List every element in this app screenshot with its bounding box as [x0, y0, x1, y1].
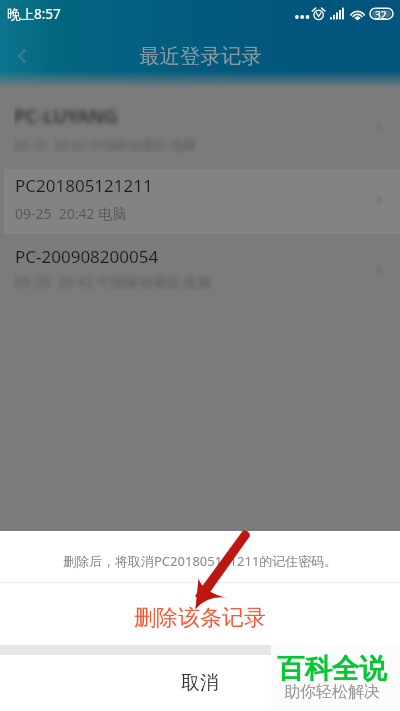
staticText: 32	[375, 8, 387, 22]
staticText: PC-200908200054	[15, 245, 159, 268]
staticText: 删除该条记录	[134, 604, 266, 632]
button[interactable]	[0, 83, 400, 169]
button[interactable]	[0, 234, 400, 304]
staticText: PC-LUYANG	[14, 103, 118, 129]
staticText: 晚上8:57	[7, 5, 61, 23]
button[interactable]: 删除该条记录	[0, 587, 400, 649]
staticText: 删除后，将取消PC201805121211的记住密码。	[63, 552, 338, 570]
button[interactable]: Back	[0, 34, 44, 78]
staticText: 09-25 20:42 中国移动通信 电脑	[14, 136, 196, 153]
staticText: PC201805121211	[15, 174, 153, 197]
button[interactable]	[0, 169, 400, 234]
staticText: 取消	[181, 671, 219, 695]
staticText: 09-25 20:42 中国移动通信 电脑	[14, 272, 212, 291]
staticText: 最近登录记录	[139, 43, 262, 69]
staticText: 09-25 20:42 电脑	[15, 204, 127, 223]
button[interactable]: 取消	[0, 655, 400, 711]
staticText: 助你轻松解决	[284, 682, 380, 702]
staticText: 百科全说	[277, 652, 387, 687]
